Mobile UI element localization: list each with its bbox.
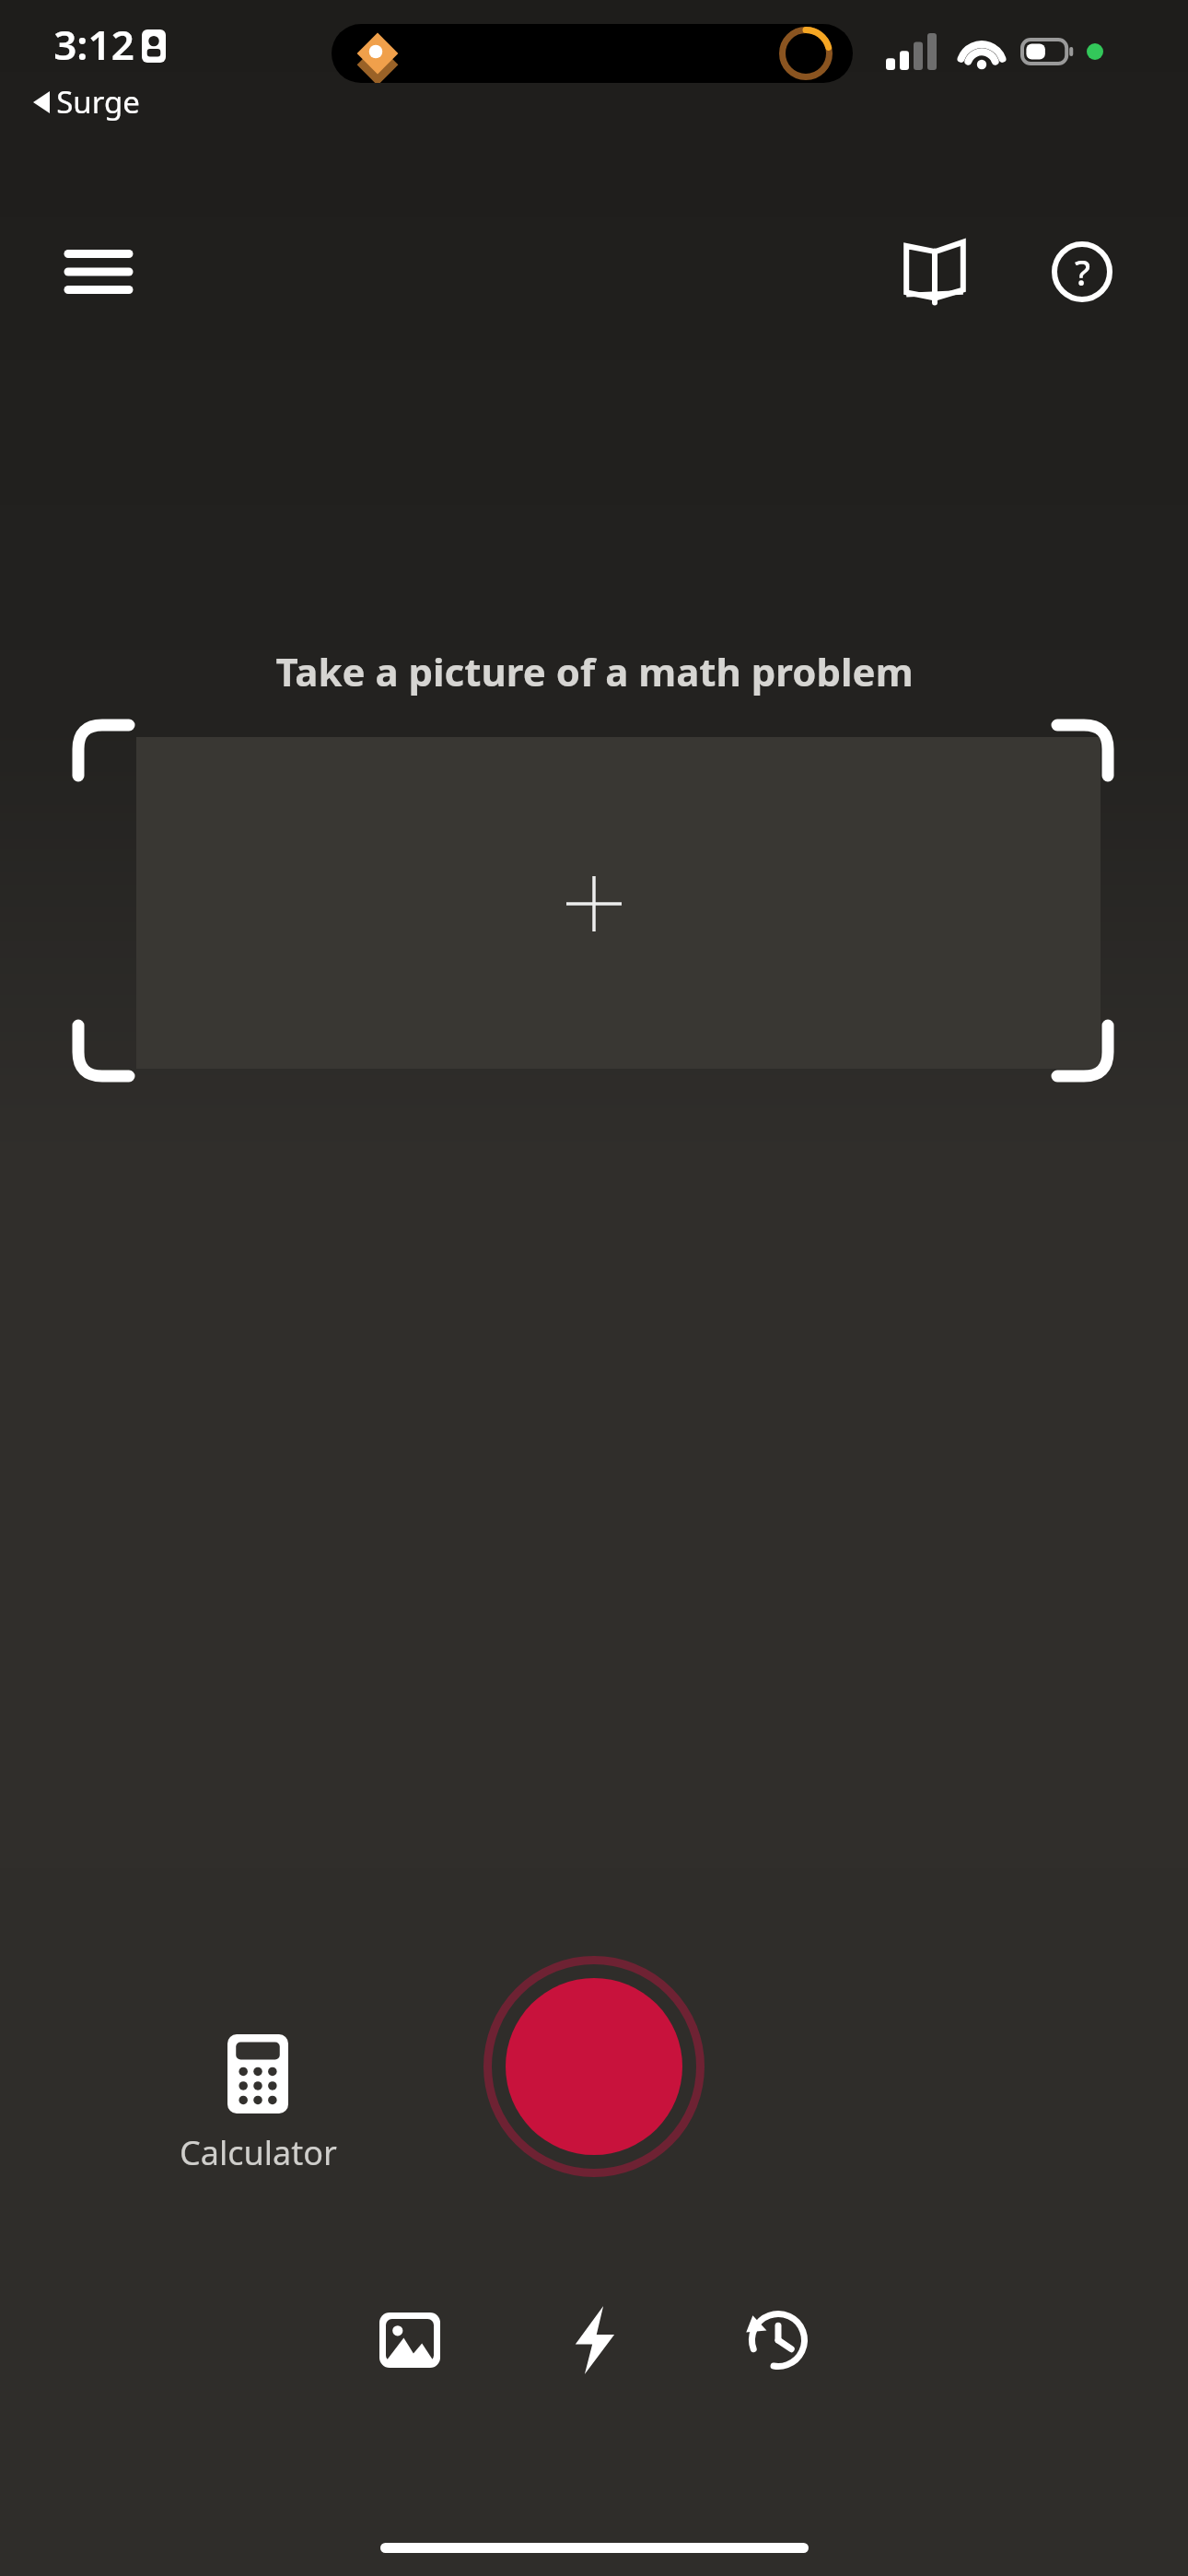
staticText: ? (1075, 248, 1090, 296)
staticText: Calculator (180, 2130, 337, 2175)
button[interactable]: Help (1031, 221, 1133, 322)
button[interactable]: History (723, 2285, 833, 2395)
button[interactable]: Flash (539, 2285, 649, 2395)
button[interactable]: Gallery (355, 2285, 465, 2395)
button[interactable]: Guide (884, 221, 985, 322)
staticText: Surge (56, 81, 140, 123)
button[interactable]: Calculator (161, 2027, 355, 2183)
button[interactable]: Menu (48, 221, 149, 322)
staticText: Take a picture of a math problem (275, 645, 914, 697)
staticText: 3:12 (53, 17, 134, 72)
button[interactable]: Take picture (474, 1947, 714, 2186)
